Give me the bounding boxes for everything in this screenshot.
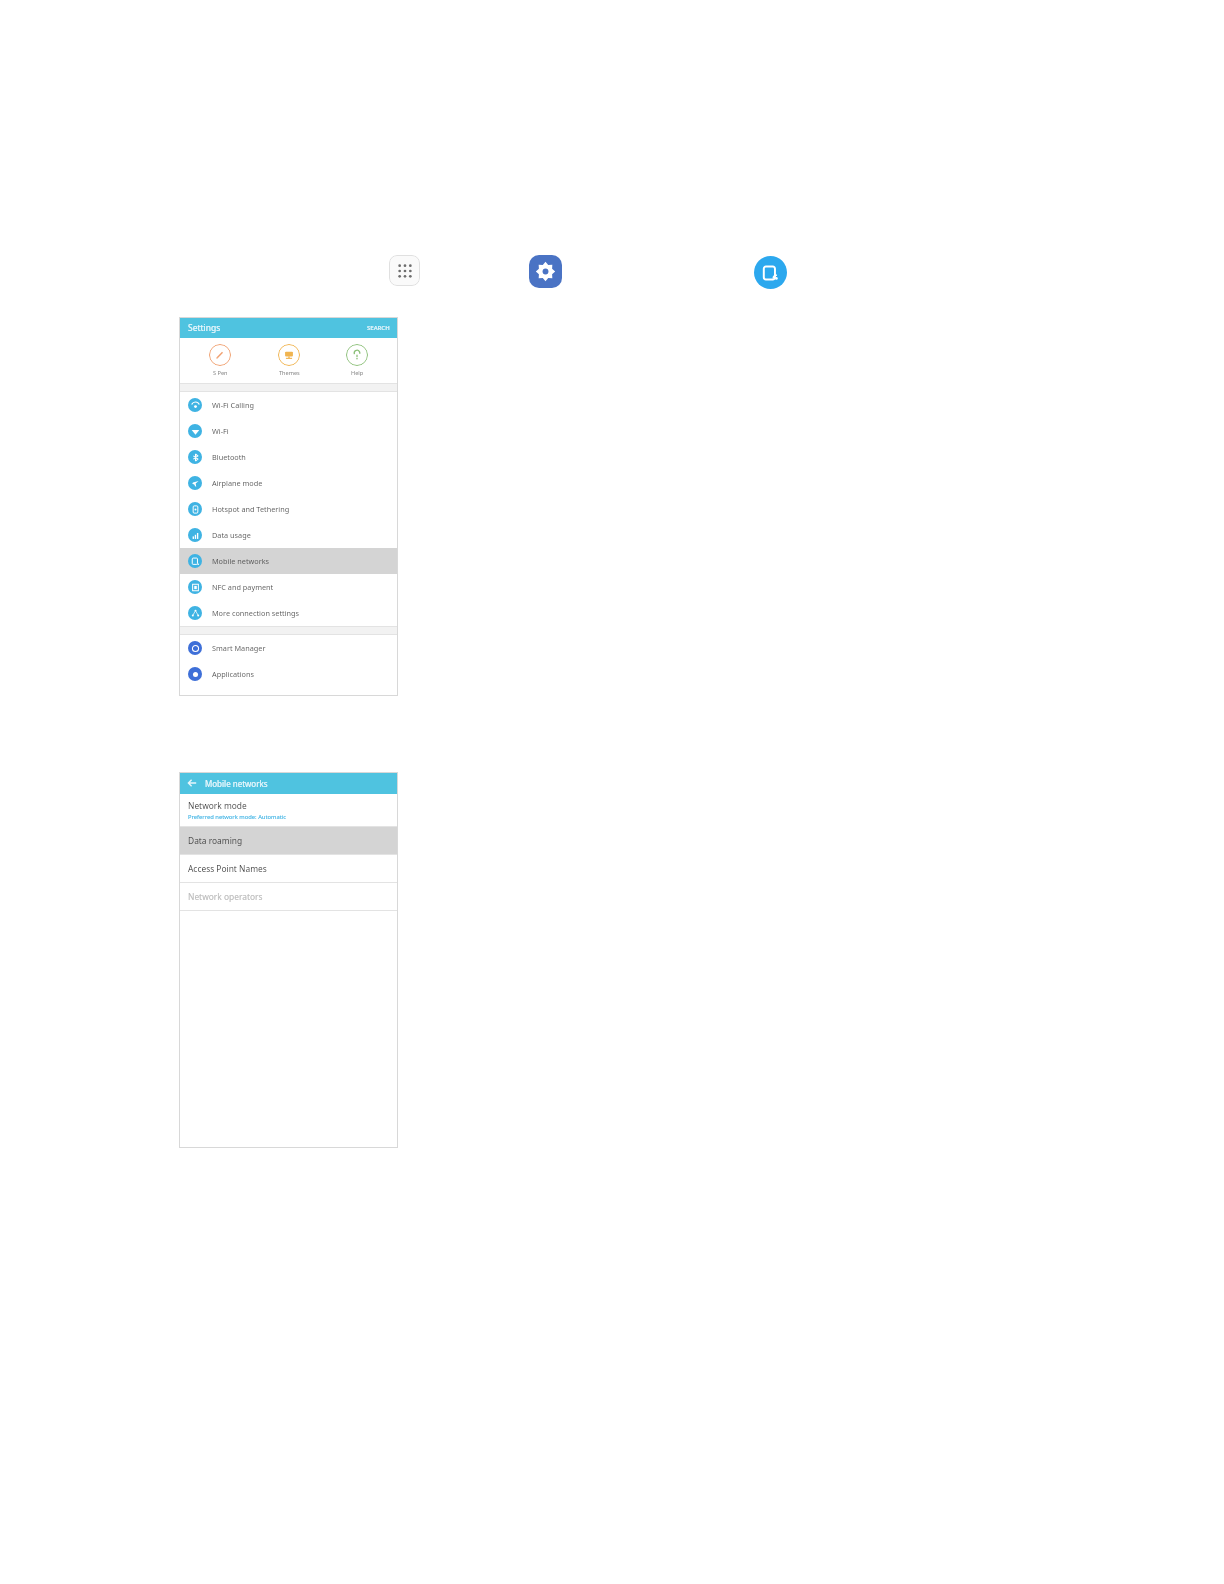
- button[interactable]: Themes: [261, 344, 317, 377]
- button[interactable]: S Pen: [192, 344, 248, 377]
- button[interactable]: Access Point Names: [179, 855, 398, 882]
- button[interactable]: Applications: [179, 661, 398, 687]
- button[interactable]: Bluetooth: [179, 444, 398, 470]
- button[interactable]: Back: [179, 772, 398, 794]
- staticText: NFC and payment: [212, 582, 274, 592]
- button[interactable]: Hotspot and Tethering: [179, 496, 398, 522]
- staticText: Data roaming: [188, 835, 243, 846]
- staticText: Data usage: [212, 530, 251, 540]
- staticText: Preferred network mode: Automatic: [188, 813, 287, 821]
- staticText: Wi-Fi: [212, 426, 229, 436]
- staticText: Themes: [279, 369, 300, 377]
- staticText: Help: [351, 369, 364, 377]
- button[interactable]: Data usage: [179, 522, 398, 548]
- staticText: Smart Manager: [212, 643, 266, 653]
- button[interactable]: NFC and payment: [179, 574, 398, 600]
- button[interactable]: Apps: [389, 255, 420, 286]
- staticText: Airplane mode: [212, 478, 263, 488]
- button[interactable]: Mobile networks: [754, 256, 787, 289]
- button[interactable]: Settings: [179, 317, 398, 338]
- button[interactable]: More connection settings: [179, 600, 398, 626]
- button[interactable]: Settings: [529, 255, 562, 288]
- button[interactable]: Help: [329, 344, 385, 377]
- staticText: Network mode: [188, 800, 247, 811]
- button[interactable]: Data roaming: [179, 827, 398, 854]
- button[interactable]: Smart Manager: [179, 635, 398, 661]
- staticText: Bluetooth: [212, 452, 246, 462]
- staticText: Settings: [188, 322, 221, 334]
- staticText: Mobile networks: [212, 556, 270, 566]
- staticText: Applications: [212, 669, 254, 679]
- staticText: Network operators: [188, 891, 263, 902]
- staticText: More connection settings: [212, 608, 300, 618]
- button[interactable]: Network operators: [179, 883, 398, 910]
- staticText: Wi-Fi Calling: [212, 400, 254, 410]
- button[interactable]: Wi-Fi Calling: [179, 392, 398, 418]
- staticText: S Pen: [213, 369, 228, 377]
- button[interactable]: Mobile networks: [179, 548, 398, 574]
- staticText: Mobile networks: [205, 778, 268, 789]
- staticText: SEARCH: [367, 324, 390, 332]
- button[interactable]: Network mode: [179, 794, 398, 826]
- button[interactable]: Wi-Fi: [179, 418, 398, 444]
- staticText: Access Point Names: [188, 863, 267, 874]
- staticText: Hotspot and Tethering: [212, 504, 290, 514]
- button[interactable]: Airplane mode: [179, 470, 398, 496]
